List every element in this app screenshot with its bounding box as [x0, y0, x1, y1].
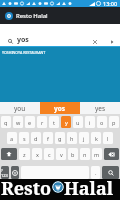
button[interactable]: you — [0, 102, 40, 114]
staticText: i — [89, 119, 91, 126]
staticText: o — [100, 119, 104, 126]
staticText: c — [48, 151, 51, 158]
staticText: e — [28, 119, 32, 126]
button[interactable]: Resto Halal — [0, 7, 120, 24]
button[interactable]: Backspace — [104, 148, 119, 160]
staticText: yos — [17, 35, 29, 45]
button[interactable]: x — [32, 148, 42, 160]
staticText: r — [41, 119, 44, 126]
button[interactable]: h — [67, 132, 77, 144]
button[interactable]: y — [61, 116, 71, 128]
staticText: Resto — [1, 176, 52, 197]
staticText: z — [23, 151, 26, 158]
button[interactable]: g — [55, 132, 65, 144]
button[interactable]: Submit search — [107, 37, 116, 46]
staticText: u — [76, 119, 80, 126]
button[interactable]: t — [49, 116, 59, 128]
staticText: x — [36, 151, 39, 158]
staticText: Resto Halal — [16, 12, 48, 20]
button[interactable]: p — [109, 116, 119, 128]
button[interactable]: v — [56, 148, 66, 160]
button[interactable]: d — [31, 132, 41, 144]
button[interactable]: l — [103, 132, 113, 144]
button[interactable]: Shift — [1, 148, 17, 160]
button[interactable]: Clear — [90, 37, 99, 46]
staticText: n — [83, 151, 87, 158]
button[interactable]: Emoji — [11, 166, 19, 179]
staticText: yes — [95, 104, 106, 113]
button[interactable]: k — [91, 132, 101, 144]
staticText: l — [107, 135, 109, 142]
staticText: 13:00 — [103, 0, 118, 7]
staticText: t — [53, 119, 55, 126]
staticText: j — [83, 135, 85, 142]
button[interactable]: u — [73, 116, 83, 128]
button[interactable]: m — [92, 148, 102, 160]
button[interactable]: Symbols — [1, 166, 9, 179]
button[interactable]: . — [91, 166, 100, 179]
button[interactable]: i — [85, 116, 95, 128]
staticText: YOSHINOYA RESTAURANT — [2, 50, 46, 55]
staticText: Halal — [64, 176, 114, 197]
staticText: k — [95, 135, 98, 142]
button[interactable]: s — [19, 132, 29, 144]
other: Search — [8, 39, 13, 44]
button[interactable]: e — [25, 116, 35, 128]
staticText: y — [65, 119, 68, 126]
button[interactable]: z — [19, 148, 30, 160]
button[interactable]: o — [97, 116, 107, 128]
button[interactable]: yos — [40, 102, 80, 114]
staticText: . — [95, 169, 97, 176]
staticText: p — [112, 119, 116, 126]
staticText: yos — [54, 104, 66, 113]
button[interactable]: j — [79, 132, 89, 144]
staticText: a — [10, 135, 14, 142]
button[interactable]: q — [1, 116, 11, 128]
button[interactable]: a — [7, 132, 17, 144]
button[interactable]: c — [44, 148, 54, 160]
staticText: q — [4, 119, 8, 126]
button[interactable]: f — [43, 132, 53, 144]
staticText: g — [58, 135, 62, 142]
staticText: d — [34, 135, 38, 142]
staticText: h — [70, 135, 74, 142]
button[interactable]: YOSHINOYA RESTAURANT — [0, 48, 120, 57]
button[interactable]: n — [80, 148, 90, 160]
staticText: b — [71, 151, 75, 158]
button[interactable]: r — [37, 116, 47, 128]
staticText: ?123 — [1, 168, 9, 178]
button[interactable]: b — [68, 148, 78, 160]
staticText: f — [47, 135, 49, 142]
staticText: m — [94, 151, 100, 158]
button[interactable]: w — [13, 116, 23, 128]
button[interactable]: Search — [102, 166, 119, 179]
button[interactable]: yes — [80, 102, 120, 114]
staticText: s — [23, 135, 26, 142]
staticText: v — [60, 151, 63, 158]
staticText: you — [14, 104, 26, 113]
staticText: w — [16, 119, 21, 126]
